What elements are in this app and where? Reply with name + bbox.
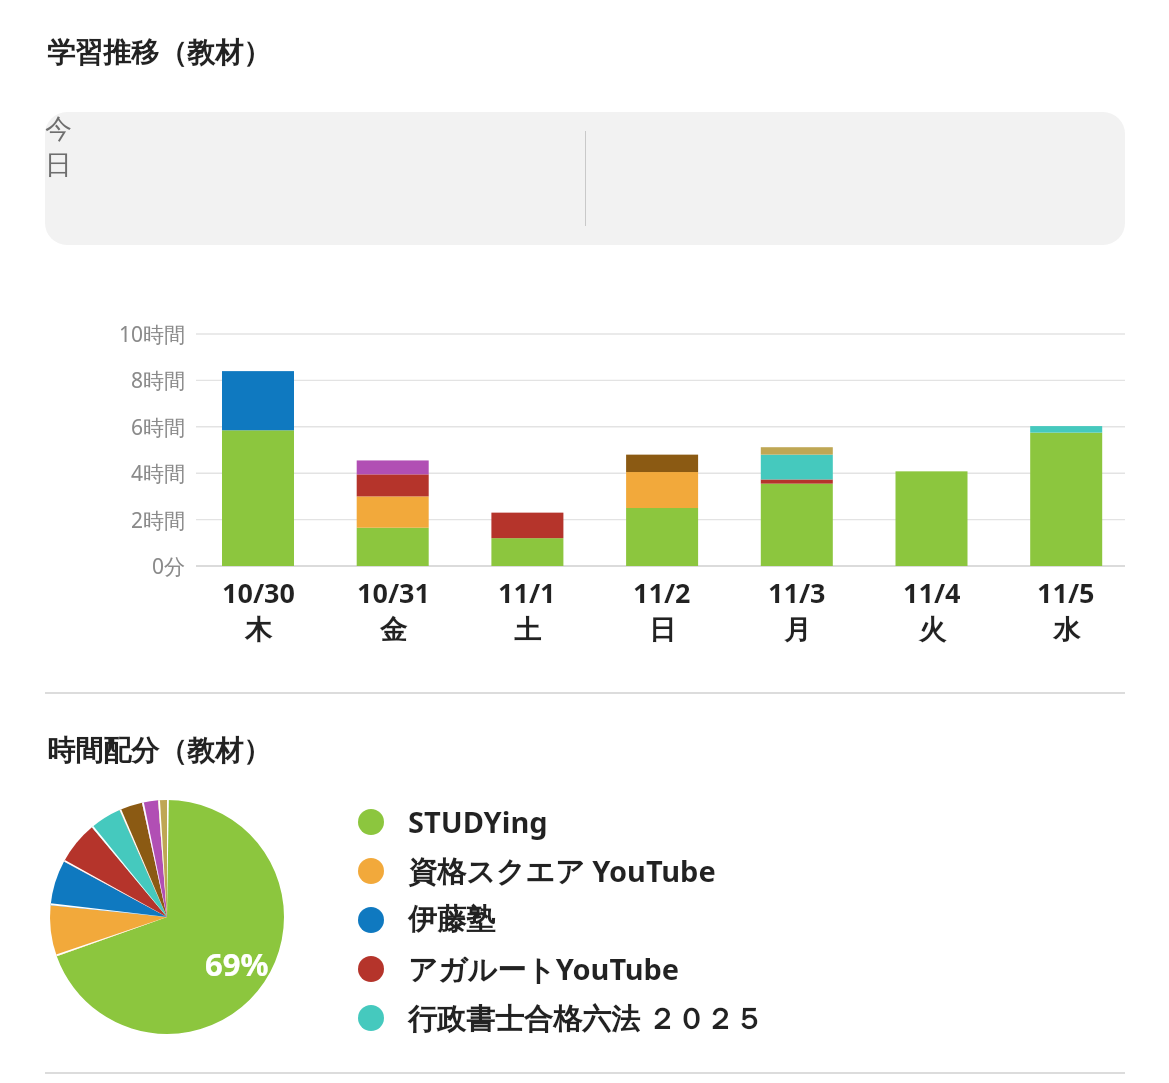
staticText: 10/31 — [357, 574, 430, 611]
button[interactable]: アガルートYouTube — [358, 944, 680, 993]
staticText: アガルートYouTube — [408, 949, 680, 989]
button[interactable]: 今日 — [45, 112, 1125, 245]
staticText: 10時間 — [119, 320, 186, 349]
staticText: 伊藤塾 — [408, 901, 495, 938]
button[interactable]: 11/4 — [865, 574, 999, 647]
staticText: 日 — [649, 613, 676, 647]
staticText: 10/30 — [222, 574, 295, 611]
button[interactable]: 資格スクエア YouTube — [358, 846, 716, 895]
staticText: 6時間 — [131, 413, 186, 442]
staticText: 11/1 — [498, 574, 556, 611]
button[interactable]: 11/1 — [460, 574, 594, 647]
staticText: 水 — [1053, 613, 1080, 647]
staticText: 8時間 — [131, 366, 186, 395]
button[interactable]: 行政書士合格六法 ２０２５ — [358, 993, 764, 1042]
staticText: 11/2 — [633, 574, 691, 611]
staticText: 資格スクエア YouTube — [408, 851, 716, 891]
staticText: 69% — [205, 943, 269, 985]
staticText: 11/5 — [1037, 574, 1095, 611]
staticText: 11/4 — [903, 574, 961, 611]
staticText: 4時間 — [131, 459, 186, 488]
staticText: 土 — [514, 613, 541, 647]
button[interactable]: 11/2 — [595, 574, 729, 647]
staticText: 金 — [380, 613, 407, 647]
button[interactable]: 10/30 — [191, 574, 325, 647]
button[interactable]: 時間配分（教材） — [45, 731, 273, 770]
staticText: 時間配分（教材） — [47, 733, 271, 768]
button[interactable]: 学習推移（教材） — [45, 33, 273, 72]
button[interactable]: 10/31 — [326, 574, 460, 647]
staticText: 月 — [784, 613, 811, 647]
staticText: 0分 — [152, 552, 186, 581]
staticText: 木 — [245, 613, 272, 647]
staticText: 火 — [919, 613, 946, 647]
staticText: 11/3 — [768, 574, 826, 611]
button[interactable]: 伊藤塾 — [358, 895, 495, 944]
staticText: STUDYing — [408, 802, 548, 841]
button[interactable]: 時間配分の円グラフ — [50, 800, 284, 1034]
staticText: 行政書士合格六法 ２０２５ — [408, 998, 764, 1038]
staticText: 2時間 — [131, 506, 186, 535]
button[interactable]: 11/5 — [999, 574, 1133, 647]
button[interactable]: 11/3 — [730, 574, 864, 647]
staticText: 学習推移（教材） — [47, 35, 271, 70]
button[interactable]: STUDYing — [358, 797, 548, 846]
